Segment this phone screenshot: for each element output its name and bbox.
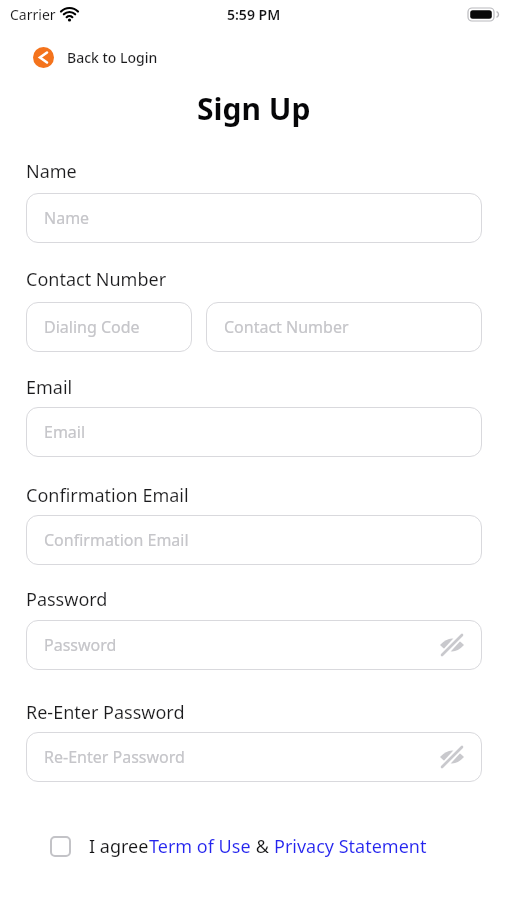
button[interactable]: Email [26, 407, 482, 457]
staticText: Contact Number [224, 316, 349, 338]
staticText: Name [44, 207, 90, 229]
staticText: Password [44, 634, 117, 656]
staticText: Dialing Code [44, 316, 140, 338]
staticText: Contact Number [26, 267, 167, 292]
staticText: Name [26, 159, 77, 184]
button[interactable]: I agree [50, 834, 427, 859]
staticText: Back to Login [67, 48, 158, 67]
staticText: Re-Enter Password [26, 700, 185, 725]
staticText: Confirmation Email [26, 483, 189, 508]
button[interactable]: Re-Enter Password [26, 732, 482, 782]
button[interactable]: Dialing Code [26, 302, 192, 352]
button[interactable]: Contact Number [206, 302, 482, 352]
button[interactable] [50, 836, 71, 857]
button[interactable]: Name [26, 193, 482, 243]
button[interactable]: Privacy Statement [274, 834, 427, 859]
staticText: Confirmation Email [44, 529, 189, 551]
button[interactable]: Password [26, 620, 482, 670]
staticText: 5:59 PM [227, 5, 281, 24]
staticText: Email [44, 421, 86, 443]
staticText: Re-Enter Password [44, 746, 185, 768]
staticText: Password [26, 587, 108, 612]
button[interactable]: Term of Use [149, 834, 251, 859]
staticText: Email [26, 375, 73, 400]
staticText: I agree [89, 834, 149, 859]
staticText: Sign Up [197, 88, 311, 129]
button[interactable]: Confirmation Email [26, 515, 482, 565]
button[interactable]: Back to Login [33, 47, 158, 68]
staticText: & [251, 834, 274, 859]
staticText: Carrier [10, 5, 56, 24]
